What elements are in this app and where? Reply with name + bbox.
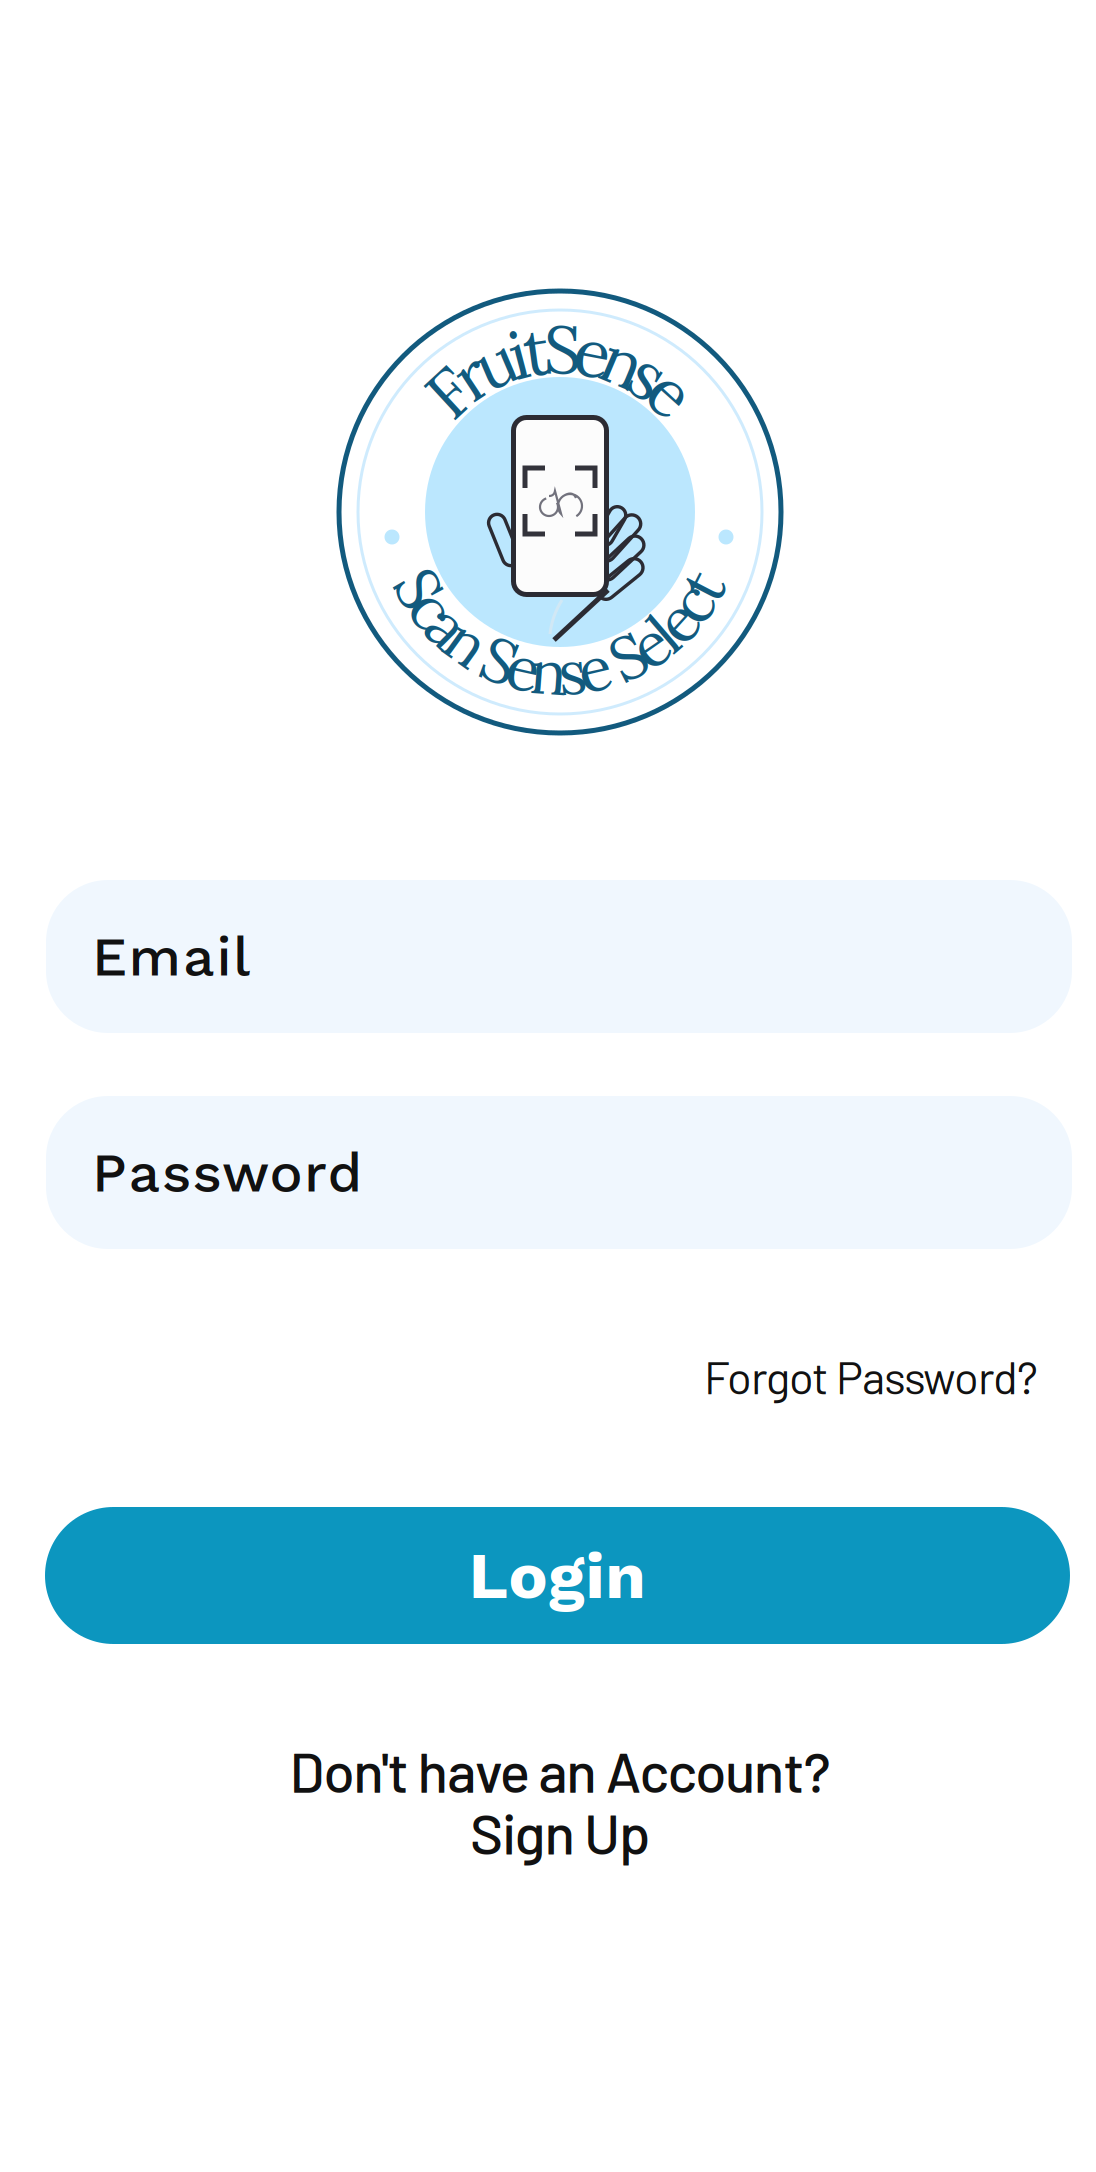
staticText: l: [551, 633, 568, 711]
staticText: e: [543, 633, 576, 711]
staticText: Password: [92, 1140, 362, 1205]
staticText: i: [550, 306, 569, 392]
staticText: e: [543, 633, 576, 711]
staticText: s: [544, 306, 575, 392]
staticText: n: [540, 306, 580, 392]
staticText: u: [540, 306, 580, 392]
button[interactable]: Password: [46, 1096, 1072, 1249]
staticText: a: [544, 633, 576, 711]
button[interactable]: Forgot Password?: [46, 1331, 1038, 1421]
staticText: c: [543, 633, 576, 711]
staticText: e: [542, 306, 578, 392]
staticText: n: [541, 633, 578, 711]
staticText: Forgot Password?: [704, 1349, 1038, 1403]
staticText: Sign Up: [470, 1798, 650, 1866]
button[interactable]: Login: [45, 1507, 1070, 1644]
staticText: t: [547, 306, 573, 392]
staticText: [552, 633, 568, 711]
staticText: [552, 633, 568, 711]
staticText: S: [542, 633, 577, 711]
staticText: c: [543, 633, 576, 711]
staticText: S: [542, 633, 577, 711]
staticText: Email: [92, 924, 250, 989]
staticText: e: [543, 633, 576, 711]
staticText: r: [545, 306, 574, 392]
button[interactable]: Email: [46, 880, 1072, 1033]
staticText: s: [546, 633, 574, 711]
staticText: F: [541, 306, 578, 392]
staticText: Don't have an Account?: [290, 1736, 830, 1804]
button[interactable]: Don't have an Account?: [110, 1726, 1010, 1876]
staticText: e: [542, 306, 578, 392]
staticText: t: [548, 633, 572, 711]
staticText: e: [543, 633, 576, 711]
staticText: n: [541, 633, 578, 711]
staticText: Login: [469, 1537, 646, 1614]
staticText: S: [542, 633, 577, 711]
staticText: S: [541, 306, 579, 392]
